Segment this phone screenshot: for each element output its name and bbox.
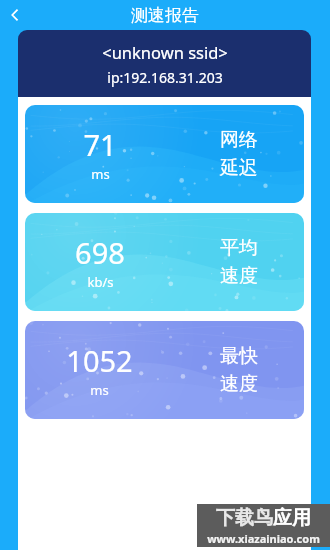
staticText: 延迟 <box>220 156 258 180</box>
staticText: 下载鸟 <box>216 506 273 530</box>
staticText: www.xiazainiao.com <box>207 531 320 546</box>
staticText: ip:192.168.31.203 <box>107 68 223 87</box>
staticText: 698 <box>75 233 125 272</box>
staticText: 速度 <box>220 372 258 396</box>
staticText: 71 <box>83 125 117 164</box>
button[interactable]: 1052 <box>25 321 304 419</box>
staticText: 1052 <box>66 341 133 380</box>
staticText: <unknown ssid> <box>102 41 228 63</box>
staticText: ms <box>91 165 110 183</box>
staticText: 速度 <box>220 264 258 288</box>
staticText: 网络 <box>220 128 258 152</box>
staticText: ms <box>90 381 109 399</box>
staticText: kb/s <box>87 273 114 291</box>
button[interactable]: Back <box>0 0 30 30</box>
staticText: 测速报告 <box>131 5 199 26</box>
staticText: 平均 <box>220 236 258 260</box>
button[interactable]: 71 <box>25 105 304 203</box>
staticText: 最快 <box>220 344 258 368</box>
button[interactable]: 698 <box>25 213 304 311</box>
staticText: 应用 <box>273 506 311 530</box>
